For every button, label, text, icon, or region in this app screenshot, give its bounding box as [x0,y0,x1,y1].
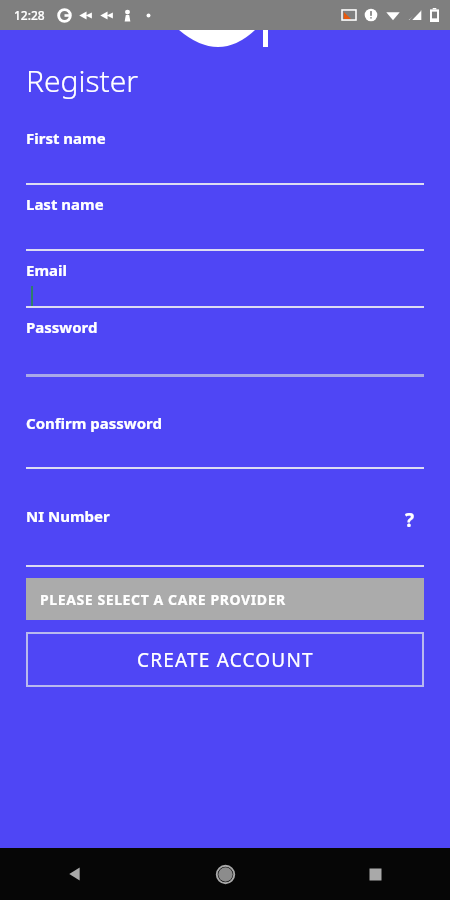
staticText: Email [26,260,67,280]
button[interactable]: PLEASE SELECT A CARE PROVIDER [26,578,424,620]
button[interactable]: First name [26,128,424,185]
button[interactable]: Recent apps [300,848,450,900]
staticText: First name [26,128,106,148]
staticText: 12:28 [14,7,45,23]
button[interactable]: Confirm password [26,413,424,469]
staticText: Register [26,60,139,101]
staticText: PLEASE SELECT A CARE PROVIDER [40,590,286,609]
staticText: Confirm password [26,413,162,433]
staticText: ? [405,507,415,533]
button[interactable]: Email [26,260,424,308]
button[interactable]: NI Number [26,506,424,567]
button[interactable]: Home [150,848,300,900]
button[interactable]: Last name [26,194,424,251]
staticText: Password [26,317,98,337]
staticText: NI Number [26,506,110,526]
button[interactable]: Password [26,317,424,377]
staticText: Last name [26,194,104,214]
button[interactable]: Help about NI Number [396,506,424,534]
staticText: CREATE ACCOUNT [137,647,314,673]
button[interactable]: CREATE ACCOUNT [26,632,424,687]
button[interactable]: Back [0,848,150,900]
